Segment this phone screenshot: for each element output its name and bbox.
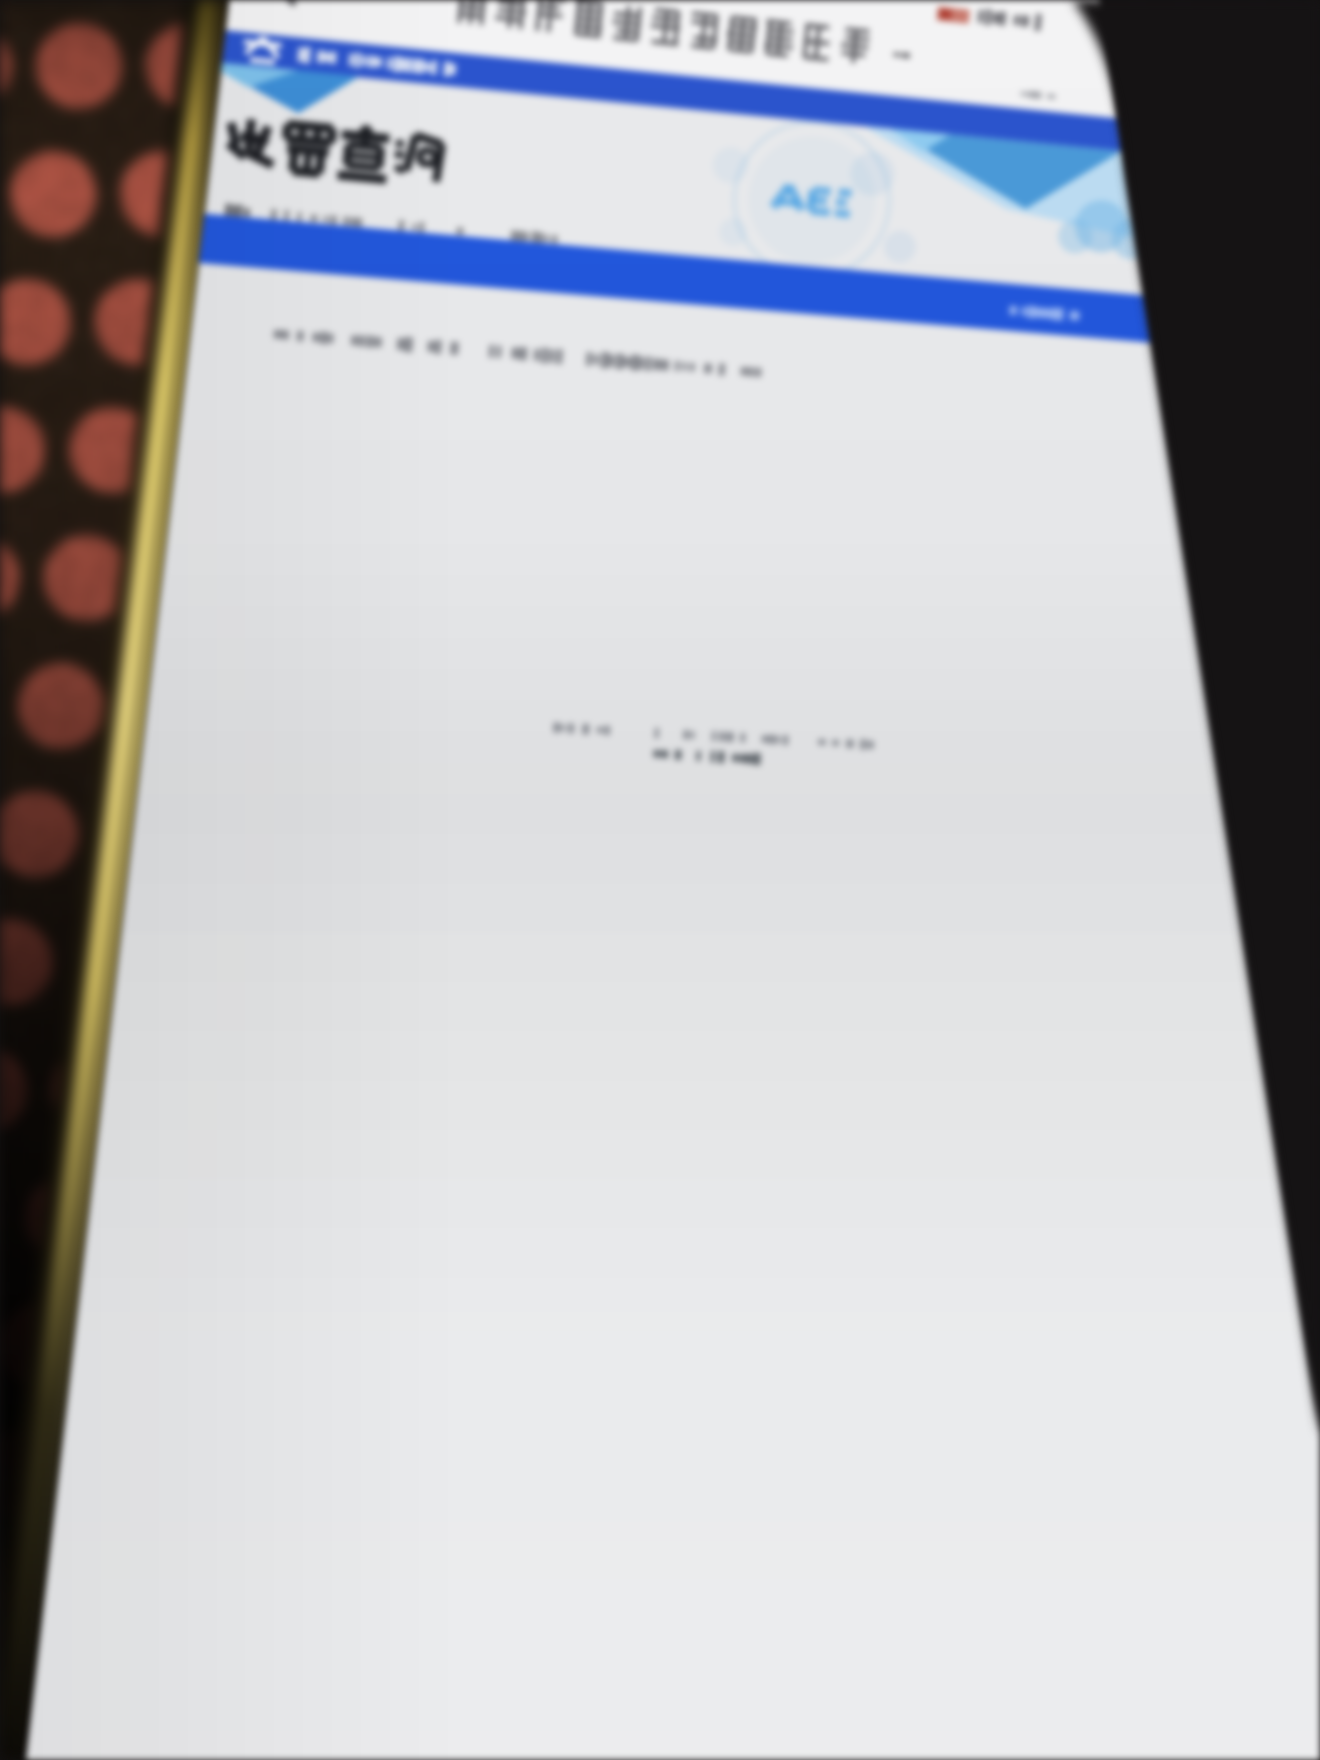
button[interactable]: Web page <box>0 0 1320 1760</box>
